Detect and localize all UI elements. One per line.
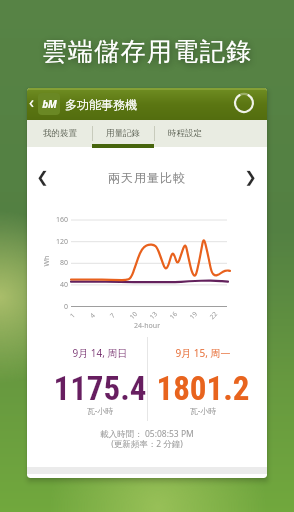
staticText: 1: [68, 311, 77, 320]
staticText: 多功能事務機: [65, 97, 137, 112]
staticText: 用量記錄: [106, 128, 140, 139]
staticText: 19: [187, 309, 199, 321]
staticText: 80: [38, 258, 68, 268]
button[interactable]: 時程設定: [154, 120, 216, 147]
button[interactable]: [233, 92, 255, 114]
staticText: 載入時間： 05:08:53 PM: [27, 428, 267, 440]
staticText: 16: [167, 309, 179, 321]
button[interactable]: ‹: [29, 91, 34, 113]
button[interactable]: 1801.2: [143, 369, 263, 408]
staticText: 我的裝置: [43, 128, 77, 139]
button[interactable]: bM: [38, 93, 60, 115]
staticText: 時程設定: [168, 128, 202, 139]
staticText: 0: [38, 302, 68, 312]
staticText: 9月 14, 周日: [40, 346, 160, 360]
staticText: 120: [38, 237, 68, 247]
staticText: 24-hour: [27, 321, 267, 331]
staticText: 瓦-小時: [40, 405, 160, 416]
button[interactable]: 用量記錄: [92, 120, 154, 147]
staticText: 10: [127, 309, 139, 321]
staticText: 160: [38, 215, 68, 225]
staticText: 瓦-小時: [143, 405, 263, 416]
staticText: 13: [147, 309, 159, 321]
staticText: 4: [88, 311, 97, 320]
button[interactable]: ❮: [36, 168, 49, 185]
staticText: 兩天用量比較: [27, 170, 267, 185]
staticText: 9月 15, 周一: [143, 346, 263, 360]
staticText: 雲端儲存用電記錄: [0, 36, 294, 67]
button[interactable]: 我的裝置: [27, 120, 92, 147]
staticText: 40: [38, 280, 68, 290]
staticText: 22: [207, 309, 219, 321]
staticText: (更新頻率：2 分鐘): [27, 438, 267, 450]
button[interactable]: ❯: [244, 168, 257, 185]
staticText: Wh: [41, 255, 51, 266]
staticText: bM: [42, 97, 57, 111]
button[interactable]: 1175.4: [40, 369, 160, 408]
staticText: 7: [108, 311, 117, 320]
